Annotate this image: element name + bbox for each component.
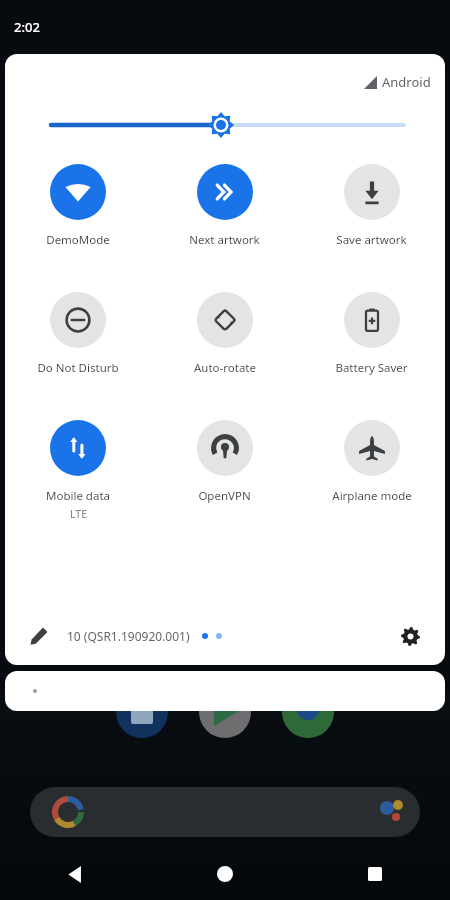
button[interactable]: OpenVPN bbox=[151, 420, 298, 504]
button[interactable]: Edit tiles bbox=[23, 620, 55, 652]
button[interactable]: Recents bbox=[300, 848, 450, 900]
button[interactable]: Settings bbox=[393, 619, 427, 653]
button[interactable]: DemoMode bbox=[5, 164, 151, 248]
staticText: Do Not Disturb bbox=[37, 360, 119, 376]
staticText: DemoMode bbox=[46, 232, 110, 248]
button[interactable]: Save artwork bbox=[298, 164, 445, 248]
button[interactable]: Mobile data bbox=[5, 420, 151, 521]
button[interactable]: Home bbox=[150, 848, 300, 900]
button[interactable]: Brightness bbox=[5, 110, 445, 140]
staticText: Save artwork bbox=[336, 232, 407, 248]
staticText: Battery Saver bbox=[335, 360, 408, 376]
button[interactable]: Battery Saver bbox=[298, 292, 445, 376]
staticText: 10 (QSR1.190920.001) bbox=[67, 628, 190, 644]
staticText: Mobile data bbox=[46, 488, 110, 504]
staticText: Android bbox=[382, 73, 431, 91]
staticText: Auto-rotate bbox=[194, 360, 256, 376]
button[interactable]: Auto-rotate bbox=[151, 292, 298, 376]
staticText: 2:02 bbox=[14, 18, 40, 36]
staticText: LTE bbox=[70, 507, 87, 521]
button[interactable] bbox=[5, 671, 445, 711]
staticText: OpenVPN bbox=[198, 488, 251, 504]
staticText: Airplane mode bbox=[332, 488, 412, 504]
button[interactable]: Back bbox=[0, 848, 150, 900]
button[interactable]: Next artwork bbox=[151, 164, 298, 248]
button[interactable]: Do Not Disturb bbox=[5, 292, 151, 376]
staticText: Next artwork bbox=[189, 232, 260, 248]
button[interactable]: Airplane mode bbox=[298, 420, 445, 504]
